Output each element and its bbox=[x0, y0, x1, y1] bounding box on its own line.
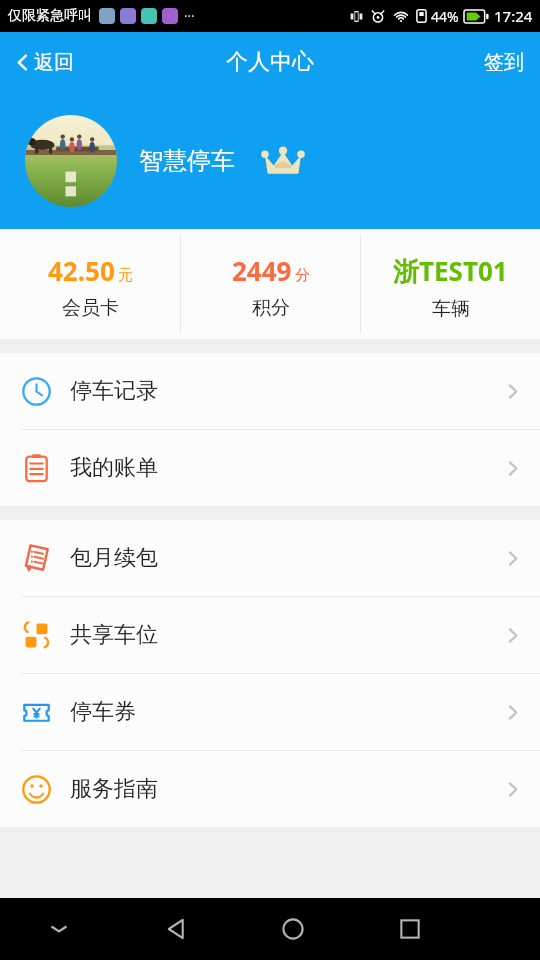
button[interactable]: 签到 bbox=[468, 40, 540, 85]
staticText: ··· bbox=[184, 7, 195, 25]
staticText: 我的账单 bbox=[70, 454, 158, 482]
staticText: 共享车位 bbox=[70, 621, 158, 649]
button[interactable]: Back bbox=[117, 898, 234, 960]
button[interactable]: 停车记录 bbox=[0, 353, 540, 429]
button[interactable]: 42.50 bbox=[0, 229, 180, 339]
staticText: 服务指南 bbox=[70, 775, 158, 803]
staticText: 17:24 bbox=[494, 6, 533, 26]
staticText: 会员卡 bbox=[62, 296, 119, 320]
staticText: 车辆 bbox=[432, 297, 470, 321]
staticText: 42.50 bbox=[48, 253, 115, 288]
button[interactable]: Hide navigation bar bbox=[0, 898, 117, 960]
staticText: 签到 bbox=[484, 50, 524, 75]
staticText: 分 bbox=[295, 266, 310, 285]
button[interactable]: 浙TEST01 bbox=[361, 229, 540, 339]
button[interactable]: 包月续包 bbox=[0, 520, 540, 596]
button[interactable]: 我的账单 bbox=[0, 430, 540, 506]
staticText: 44% bbox=[431, 7, 459, 26]
staticText: 停车券 bbox=[70, 698, 136, 726]
staticText: 积分 bbox=[252, 296, 290, 320]
staticText: 浙TEST01 bbox=[393, 253, 508, 289]
staticText: 元 bbox=[118, 266, 133, 285]
staticText: 仅限紧急呼叫 bbox=[8, 7, 92, 25]
button[interactable]: 服务指南 bbox=[0, 751, 540, 827]
staticText: 停车记录 bbox=[70, 377, 158, 405]
button[interactable]: 停车券 bbox=[0, 674, 540, 750]
button[interactable]: 返回 bbox=[0, 40, 90, 85]
staticText: 2449 bbox=[232, 253, 292, 288]
staticText: 返回 bbox=[34, 50, 74, 75]
staticText: 智慧停车 bbox=[139, 146, 235, 176]
staticText: 包月续包 bbox=[70, 544, 158, 572]
button[interactable]: Recent apps bbox=[351, 898, 468, 960]
button[interactable]: 2449 bbox=[181, 229, 360, 339]
staticText: 个人中心 bbox=[226, 48, 314, 76]
button[interactable]: Home bbox=[234, 898, 351, 960]
button[interactable]: 共享车位 bbox=[0, 597, 540, 673]
